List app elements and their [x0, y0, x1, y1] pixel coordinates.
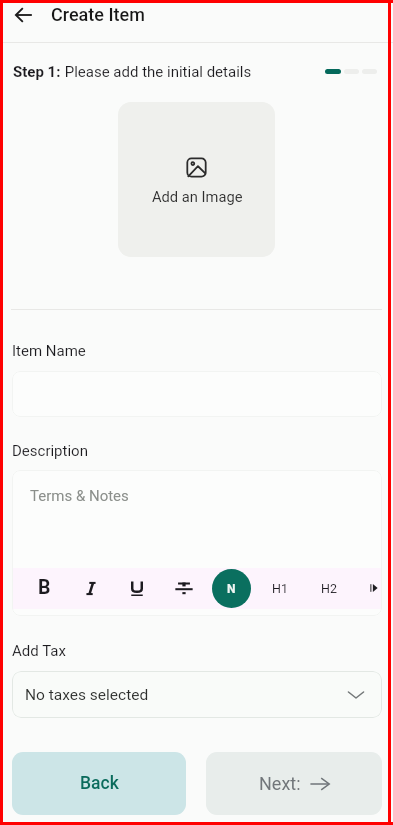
staticText: Description — [12, 442, 88, 460]
button[interactable]: Underline — [123, 575, 150, 602]
staticText: Create Item — [51, 4, 145, 25]
button[interactable]: Terms & Notes — [30, 487, 129, 505]
button[interactable]: More formatting options — [362, 576, 382, 600]
staticText: Next: — [259, 773, 301, 794]
staticText: Add an Image — [152, 188, 243, 205]
button[interactable]: H1 — [268, 576, 292, 600]
button[interactable]: No taxes selected — [12, 671, 382, 718]
staticText: Back — [80, 773, 119, 794]
button[interactable]: H2 — [317, 576, 341, 600]
staticText: No taxes selected — [25, 686, 149, 704]
button[interactable]: Bold — [31, 574, 58, 601]
staticText: Add Tax — [12, 642, 66, 660]
button[interactable]: Back — [8, 3, 39, 27]
button[interactable]: Strikethrough — [170, 575, 197, 602]
staticText: H2 — [321, 581, 337, 596]
button[interactable]: Add an Image — [118, 102, 275, 257]
button[interactable]: Back — [12, 752, 186, 815]
staticText: Step 1: — [13, 63, 61, 81]
staticText: H1 — [272, 581, 288, 596]
button[interactable]: Italic — [77, 575, 104, 602]
button[interactable]: N — [212, 569, 251, 608]
button[interactable]: Next: — [206, 752, 382, 815]
staticText: Please add the initial details — [61, 63, 252, 81]
staticText: Item Name — [12, 342, 86, 360]
staticText: B — [38, 576, 51, 599]
staticText: N — [227, 582, 236, 596]
